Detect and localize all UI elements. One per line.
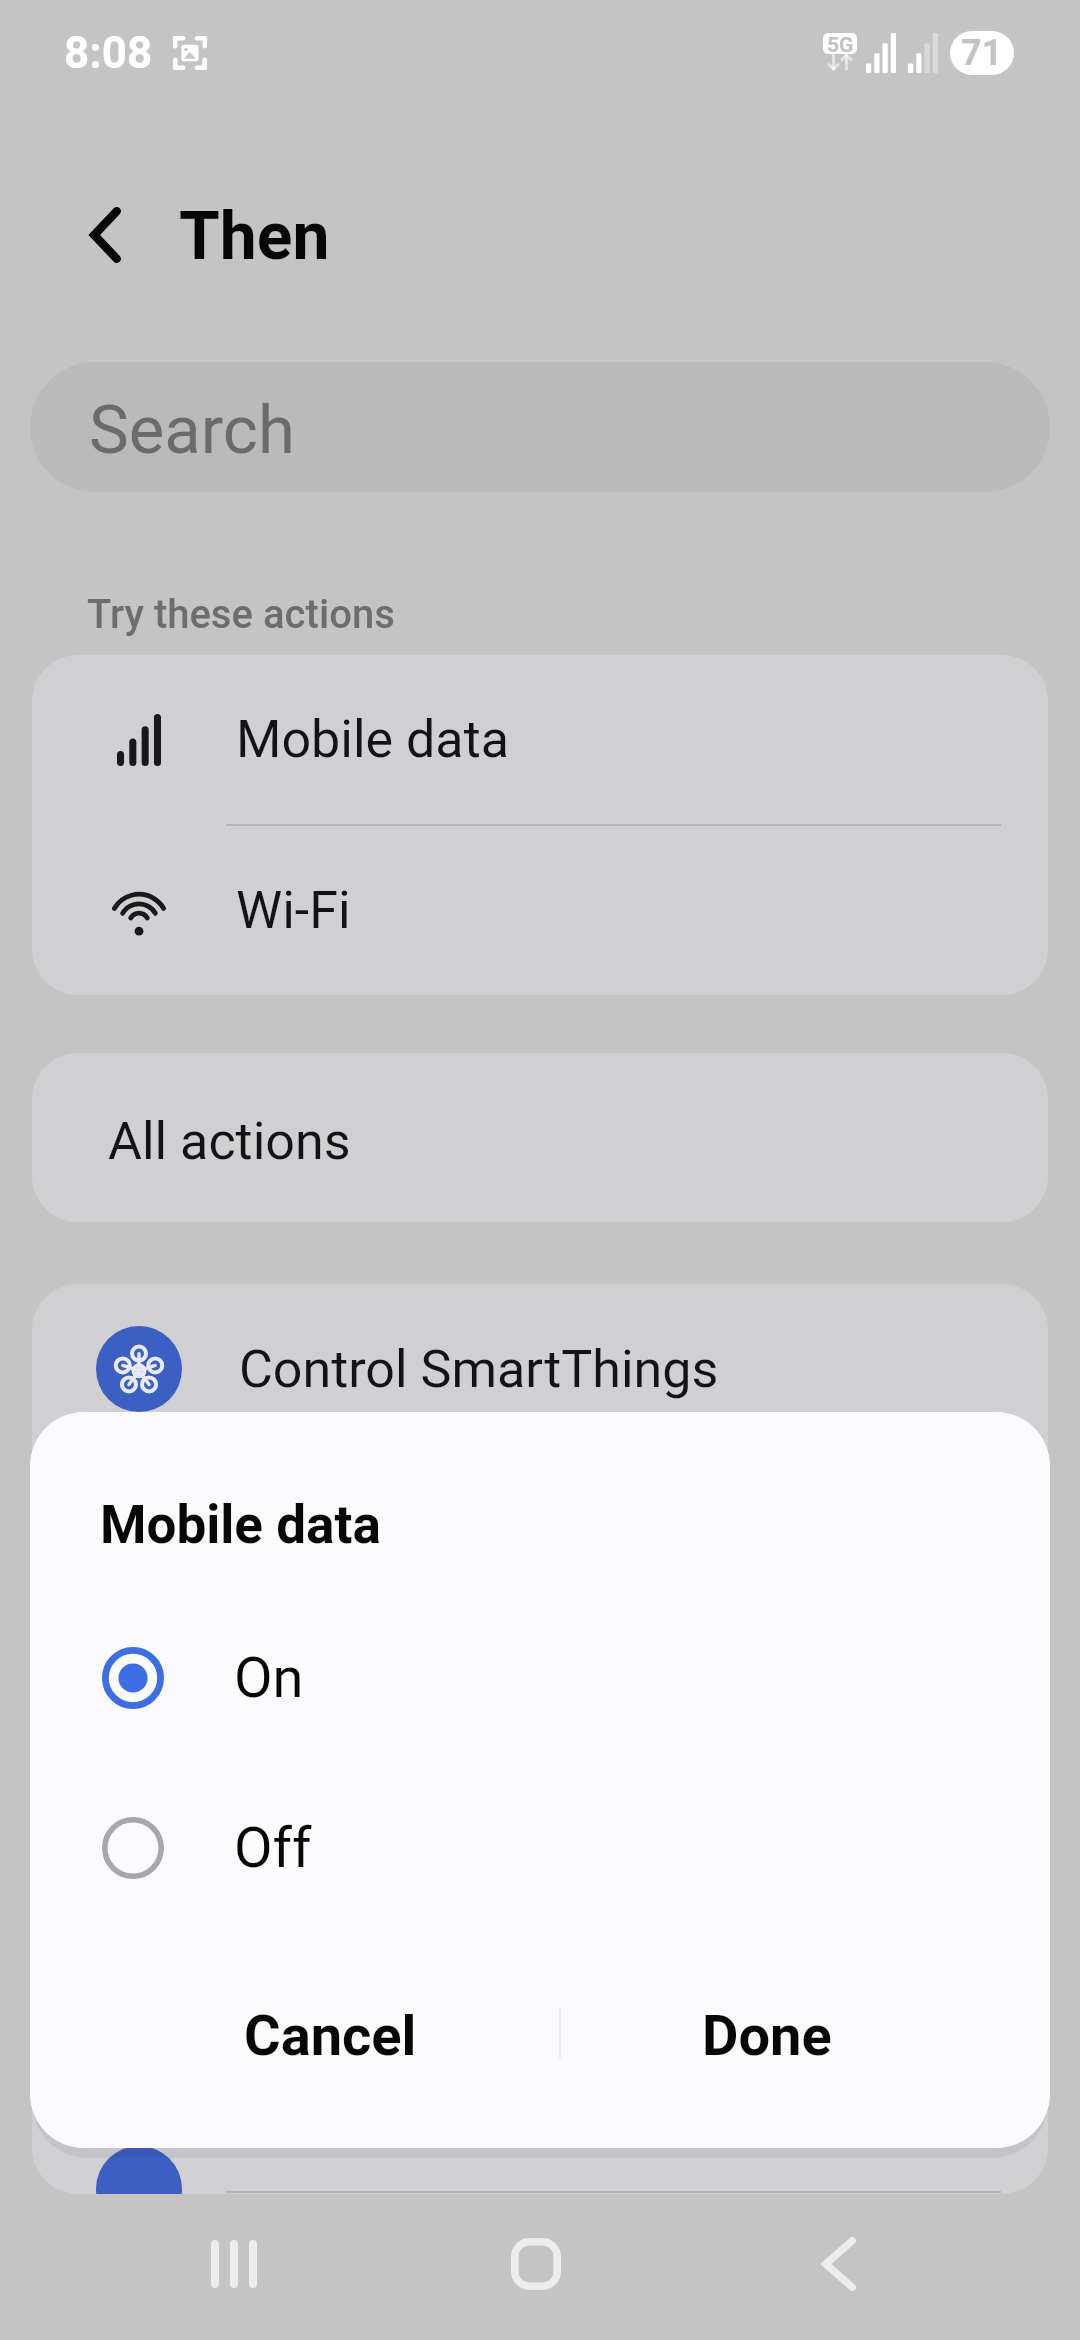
button[interactable]: Back bbox=[64, 194, 146, 276]
staticText: Cancel bbox=[244, 2003, 417, 2069]
staticText: Search bbox=[89, 391, 295, 470]
staticText: Control SmartThings bbox=[239, 1339, 719, 1400]
staticText: Then bbox=[179, 198, 330, 275]
staticText: Wi-Fi bbox=[236, 880, 351, 941]
staticText: 8:08 bbox=[64, 27, 153, 79]
staticText: Mobile data bbox=[100, 1494, 381, 1556]
button[interactable]: Recent apps bbox=[154, 2224, 314, 2304]
button[interactable]: Back bbox=[759, 2224, 919, 2304]
staticText: Try these actions bbox=[87, 591, 395, 638]
staticText: On bbox=[234, 1645, 304, 1711]
button[interactable]: Cancel bbox=[140, 1972, 520, 2100]
staticText: 5G bbox=[827, 33, 854, 54]
staticText: All actions bbox=[108, 1111, 351, 1172]
button[interactable]: Done bbox=[547, 1972, 987, 2100]
staticText: Off bbox=[234, 1815, 312, 1881]
staticText: 71 bbox=[961, 32, 1003, 74]
button[interactable]: Wi-Fi bbox=[32, 826, 1048, 995]
button[interactable]: On bbox=[30, 1619, 1050, 1737]
button[interactable]: Home bbox=[456, 2224, 616, 2304]
button[interactable]: Off bbox=[30, 1789, 1050, 1907]
staticText: Done bbox=[702, 2003, 832, 2069]
button[interactable]: Mobile data bbox=[32, 655, 1048, 824]
button[interactable]: Search bbox=[30, 362, 1050, 492]
button[interactable]: Control SmartThings bbox=[32, 1284, 1048, 1454]
staticText: Mobile data bbox=[236, 709, 509, 770]
button[interactable]: All actions bbox=[32, 1053, 1048, 1222]
